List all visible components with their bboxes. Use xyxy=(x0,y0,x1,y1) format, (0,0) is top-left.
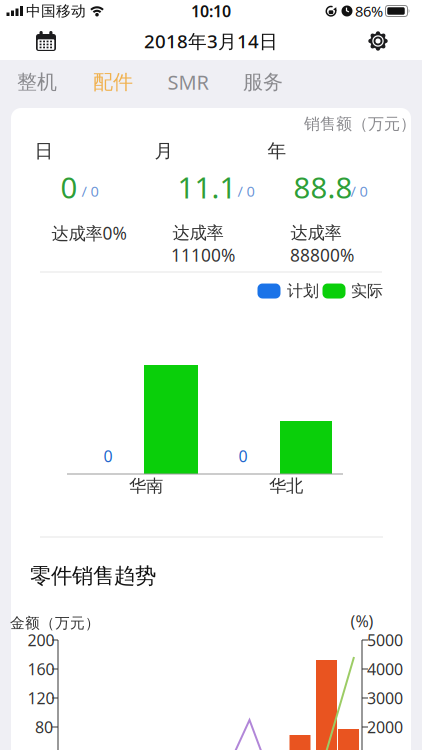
staticText: 实际 xyxy=(351,281,383,301)
staticText: 86% xyxy=(355,1,383,21)
staticText: 达成率 xyxy=(172,222,223,244)
staticText: 华北 xyxy=(269,475,303,497)
staticText: 200 xyxy=(27,629,54,651)
staticText: 4000 xyxy=(367,658,403,680)
staticText: 达成率0% xyxy=(51,221,126,244)
staticText: 160 xyxy=(27,658,54,680)
staticText: 0 xyxy=(60,167,77,206)
staticText: 零件销售趋势 xyxy=(30,563,156,589)
staticText: 5000 xyxy=(367,629,403,651)
staticText: / 0 xyxy=(81,181,98,201)
staticText: 配件 xyxy=(93,70,133,94)
staticText: / 0 xyxy=(237,181,254,201)
button[interactable] xyxy=(24,22,68,60)
staticText: 计划 xyxy=(287,281,319,301)
staticText: / 0 xyxy=(350,181,367,201)
staticText: SMR xyxy=(167,69,208,95)
staticText: (%) xyxy=(350,610,373,632)
staticText: 120 xyxy=(27,687,54,709)
staticText: 88800% xyxy=(290,243,354,266)
staticText: 11.1 xyxy=(177,167,236,206)
staticText: 2018年3月14日 xyxy=(144,29,278,53)
staticText: 销售额（万元） xyxy=(304,114,416,134)
staticText: 月 xyxy=(154,139,173,162)
staticText: 2000 xyxy=(367,716,403,738)
staticText: 日 xyxy=(34,139,53,162)
button[interactable]: 服务 xyxy=(233,60,293,104)
button[interactable]: SMR xyxy=(158,60,218,104)
staticText: 0 xyxy=(238,445,247,467)
button[interactable] xyxy=(356,22,400,60)
button[interactable]: 整机 xyxy=(7,60,67,104)
staticText: 中国移动 xyxy=(26,2,86,20)
staticText: 80 xyxy=(35,716,53,738)
staticText: 服务 xyxy=(243,70,283,94)
staticText: 0 xyxy=(103,445,112,467)
staticText: 达成率 xyxy=(290,222,341,244)
staticText: 整机 xyxy=(17,70,57,94)
staticText: 金额（万元） xyxy=(10,614,100,632)
staticText: 3000 xyxy=(367,687,403,709)
staticText: 88.8 xyxy=(293,167,352,206)
staticText: 10:10 xyxy=(191,0,231,22)
button[interactable]: 配件 xyxy=(83,60,143,104)
staticText: 11100% xyxy=(171,243,235,266)
staticText: 年 xyxy=(267,139,286,162)
staticText: 华南 xyxy=(129,475,163,497)
